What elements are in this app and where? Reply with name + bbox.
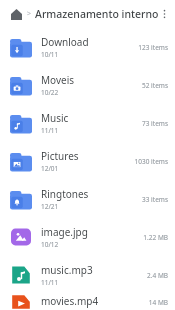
staticText: music.mp3 — [41, 263, 93, 277]
button[interactable]: music.mp3 — [0, 256, 175, 294]
staticText: 12/01 — [41, 164, 59, 173]
staticText: Download — [41, 35, 89, 49]
staticText: 73 items — [141, 119, 168, 128]
staticText: 10/11 — [41, 50, 59, 59]
staticText: 10/12 — [41, 240, 59, 249]
staticText: movies.mp4 — [41, 294, 99, 308]
staticText: 2.4 MB — [147, 271, 168, 280]
button[interactable]: Download — [0, 28, 175, 66]
button[interactable]: movies.mp4 — [0, 294, 175, 310]
staticText: 52 items — [141, 81, 168, 90]
staticText: 10/22 — [41, 88, 59, 97]
staticText: Pictures — [41, 149, 79, 163]
staticText: 14 MB — [148, 298, 168, 307]
staticText: 12/21 — [41, 202, 59, 211]
button[interactable]: Ringtones — [0, 180, 175, 218]
staticText: Ringtones — [41, 187, 89, 201]
button[interactable]: image.jpg — [0, 218, 175, 256]
staticText: 123 items — [138, 43, 168, 52]
staticText: > — [27, 9, 32, 19]
button[interactable]: Moveis — [0, 66, 175, 104]
staticText: Moveis — [41, 73, 75, 87]
button[interactable]: Music — [0, 104, 175, 142]
staticText: 11/11 — [41, 278, 59, 287]
staticText: Music — [41, 111, 69, 125]
staticText: 1.22 MB — [143, 233, 168, 242]
button[interactable]: More options — [159, 5, 170, 23]
staticText: image.jpg — [41, 225, 88, 239]
button[interactable]: Pictures — [0, 142, 175, 180]
staticText: 11/11 — [41, 126, 59, 135]
staticText: 33 items — [141, 195, 168, 204]
staticText: 1030 items — [134, 157, 168, 166]
button[interactable]: Home — [7, 5, 25, 23]
staticText: Armazenamento interno — [35, 7, 159, 21]
